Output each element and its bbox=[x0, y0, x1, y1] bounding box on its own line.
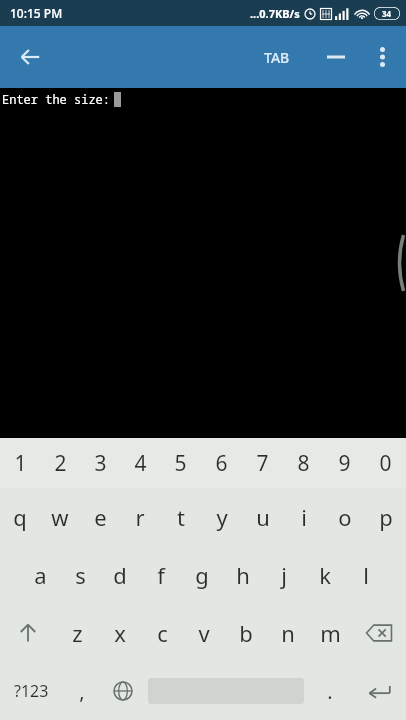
staticText: 6 bbox=[215, 449, 228, 478]
button[interactable]: . bbox=[308, 662, 351, 720]
staticText: w bbox=[51, 502, 69, 532]
button[interactable]: 1 bbox=[0, 438, 40, 488]
staticText: p bbox=[379, 502, 393, 532]
staticText: 0 bbox=[379, 449, 392, 478]
button[interactable]: ?123 bbox=[0, 662, 62, 720]
button[interactable]: 3 bbox=[80, 438, 120, 488]
staticText: r bbox=[135, 502, 145, 532]
button[interactable]: TAB bbox=[254, 38, 300, 77]
button[interactable]: a bbox=[20, 546, 60, 604]
button[interactable]: s bbox=[60, 546, 100, 604]
staticText: e bbox=[94, 502, 107, 532]
staticText: a bbox=[34, 560, 47, 590]
button[interactable]: m bbox=[309, 604, 351, 662]
staticText: . bbox=[327, 678, 333, 705]
button[interactable]: Change language bbox=[101, 662, 144, 720]
staticText: 8 bbox=[297, 449, 310, 478]
staticText: d bbox=[113, 560, 127, 590]
staticText: j bbox=[281, 560, 287, 590]
staticText: 2 bbox=[54, 449, 67, 478]
staticText: 5 bbox=[174, 449, 187, 478]
staticText: 1 bbox=[14, 449, 27, 478]
staticText: o bbox=[338, 502, 352, 532]
button[interactable]: 0 bbox=[365, 438, 406, 488]
button[interactable]: Enter bbox=[351, 662, 406, 720]
button[interactable]: h bbox=[222, 546, 263, 604]
button[interactable]: 4 bbox=[120, 438, 160, 488]
button[interactable]: , bbox=[62, 662, 101, 720]
button[interactable]: Shift bbox=[0, 604, 56, 662]
button[interactable]: More options bbox=[360, 35, 404, 79]
button[interactable]: k bbox=[304, 546, 345, 604]
button[interactable]: 9 bbox=[324, 438, 365, 488]
button[interactable]: x bbox=[99, 604, 141, 662]
button[interactable]: c bbox=[141, 604, 183, 662]
button[interactable]: u bbox=[242, 488, 283, 546]
button[interactable]: o bbox=[324, 488, 365, 546]
button[interactable]: r bbox=[120, 488, 160, 546]
staticText: c bbox=[157, 618, 168, 648]
staticText: x bbox=[114, 618, 126, 648]
button[interactable]: z bbox=[56, 604, 99, 662]
staticText: , bbox=[79, 678, 85, 705]
button[interactable]: p bbox=[365, 488, 406, 546]
button[interactable]: Minimize bbox=[316, 37, 356, 77]
staticText: 4 bbox=[134, 449, 147, 478]
staticText: q bbox=[13, 502, 27, 532]
staticText: z bbox=[72, 618, 83, 648]
button[interactable]: b bbox=[225, 604, 267, 662]
staticText: i bbox=[301, 502, 307, 532]
button[interactable]: i bbox=[283, 488, 324, 546]
button[interactable]: 2 bbox=[40, 438, 80, 488]
staticText: ...0.7KB/s bbox=[250, 6, 300, 21]
staticText: h bbox=[236, 560, 250, 590]
button[interactable]: Backspace bbox=[351, 604, 406, 662]
button[interactable]: y bbox=[201, 488, 242, 546]
staticText: s bbox=[75, 560, 86, 590]
staticText: n bbox=[281, 618, 295, 648]
staticText: y bbox=[216, 502, 228, 532]
staticText: 34 bbox=[382, 8, 392, 19]
button[interactable]: d bbox=[100, 546, 140, 604]
staticText: 3 bbox=[94, 449, 107, 478]
button[interactable]: t bbox=[160, 488, 201, 546]
button[interactable]: l bbox=[345, 546, 386, 604]
button[interactable]: j bbox=[263, 546, 304, 604]
staticText: Enter the size: bbox=[2, 91, 118, 107]
staticText: l bbox=[363, 560, 369, 590]
staticText: 7 bbox=[256, 449, 269, 478]
button[interactable]: v bbox=[183, 604, 225, 662]
staticText: ?123 bbox=[14, 680, 49, 702]
button[interactable]: f bbox=[140, 546, 181, 604]
button[interactable]: 7 bbox=[242, 438, 283, 488]
button[interactable]: g bbox=[181, 546, 222, 604]
staticText: TAB bbox=[264, 48, 290, 67]
staticText: 9 bbox=[338, 449, 351, 478]
button[interactable]: 6 bbox=[201, 438, 242, 488]
staticText: u bbox=[256, 502, 270, 532]
staticText: g bbox=[195, 560, 209, 590]
staticText: b bbox=[239, 618, 253, 648]
button[interactable]: e bbox=[80, 488, 120, 546]
staticText: v bbox=[198, 618, 210, 648]
button[interactable]: 8 bbox=[283, 438, 324, 488]
staticText: k bbox=[319, 560, 331, 590]
staticText: 10:15 PM bbox=[10, 5, 63, 21]
button[interactable]: w bbox=[40, 488, 80, 546]
button[interactable]: q bbox=[0, 488, 40, 546]
button[interactable]: 5 bbox=[160, 438, 201, 488]
button[interactable]: Back bbox=[8, 35, 52, 79]
staticText: f bbox=[157, 560, 165, 590]
staticText: m bbox=[320, 618, 341, 648]
staticText: t bbox=[177, 502, 185, 532]
button[interactable]: n bbox=[267, 604, 309, 662]
